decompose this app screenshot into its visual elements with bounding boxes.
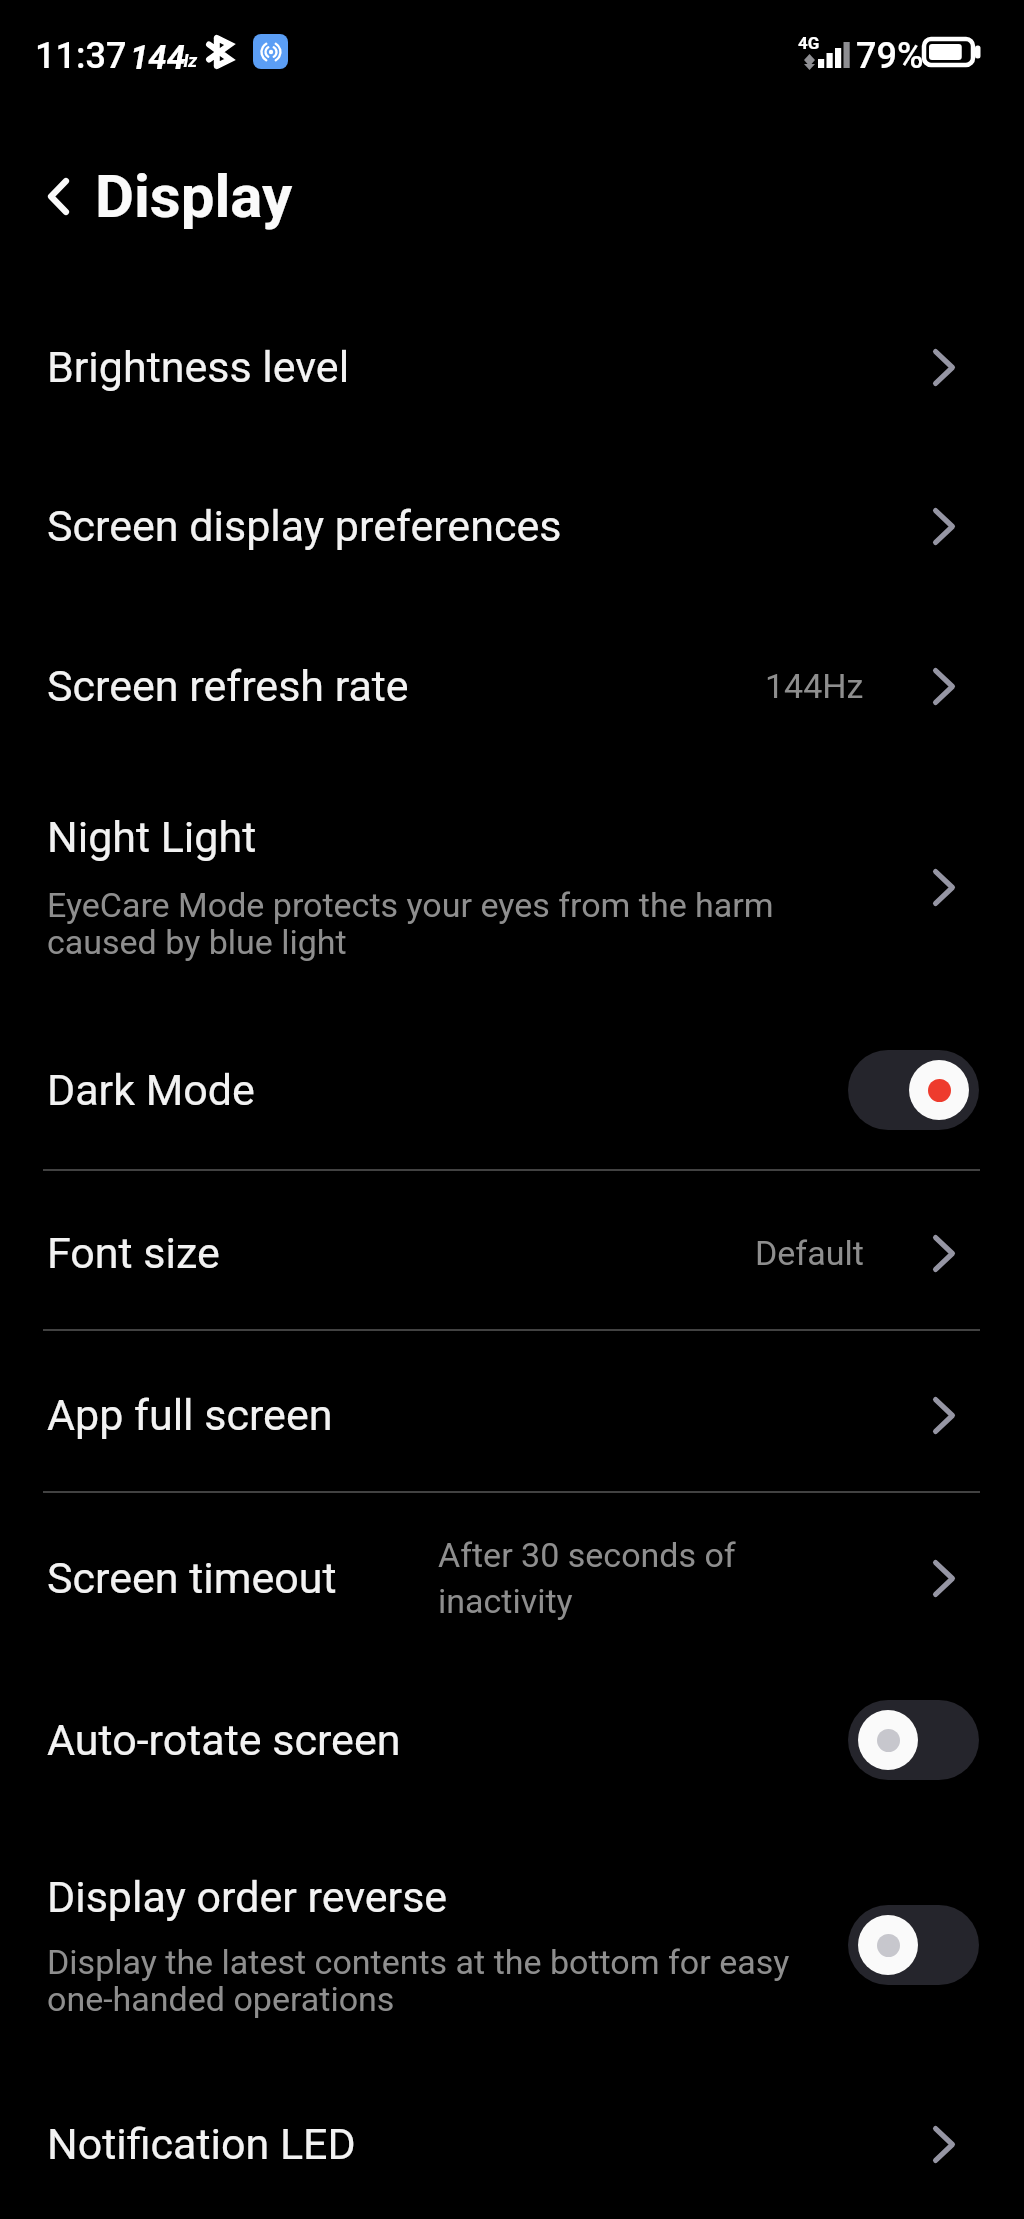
button[interactable]: Auto-rotate screen [0, 1675, 1024, 1805]
staticText: Brightness level [47, 342, 350, 392]
staticText: Screen refresh rate [47, 661, 409, 711]
button[interactable]: Off [848, 1905, 979, 1985]
staticText: Display the latest contents at the botto… [47, 1942, 790, 2019]
staticText: 79% [856, 35, 924, 77]
button[interactable]: Notification LED [0, 2079, 1024, 2209]
button[interactable]: On [848, 1050, 979, 1130]
button[interactable]: Back [0, 140, 1024, 252]
button[interactable]: Screen refresh rate [0, 621, 1024, 751]
staticText: 144Hz [765, 666, 864, 706]
button[interactable]: Night Light [0, 787, 1024, 987]
staticText: Display order reverse [47, 1872, 448, 1922]
button[interactable]: Off [848, 1700, 979, 1780]
staticText: Dark Mode [47, 1065, 255, 1115]
staticText: 144 [130, 38, 186, 77]
staticText: 4G [798, 33, 820, 53]
other: Back [48, 178, 69, 215]
button[interactable]: Display order reverse [0, 1845, 1024, 2045]
staticText: Screen timeout [47, 1553, 337, 1603]
staticText: Default [755, 1233, 864, 1273]
staticText: App full screen [47, 1390, 333, 1440]
staticText: Font size [47, 1228, 220, 1278]
staticText: Hz [176, 50, 198, 71]
staticText: Notification LED [47, 2119, 356, 2169]
button[interactable]: Brightness level [0, 302, 1024, 432]
staticText: After 30 seconds of inactivity [438, 1535, 736, 1622]
button[interactable]: Dark Mode [0, 1025, 1024, 1155]
staticText: Night Light [47, 812, 257, 862]
button[interactable]: Font size [0, 1188, 1024, 1318]
staticText: 11:37 [35, 35, 127, 77]
staticText: Screen display preferences [47, 501, 562, 551]
staticText: Auto-rotate screen [47, 1715, 401, 1765]
staticText: Display [95, 161, 293, 231]
button[interactable]: Screen display preferences [0, 461, 1024, 591]
staticText: EyeCare Mode protects your eyes from the… [47, 885, 774, 962]
button[interactable]: App full screen [0, 1350, 1024, 1480]
button[interactable]: Screen timeout [0, 1498, 1024, 1658]
